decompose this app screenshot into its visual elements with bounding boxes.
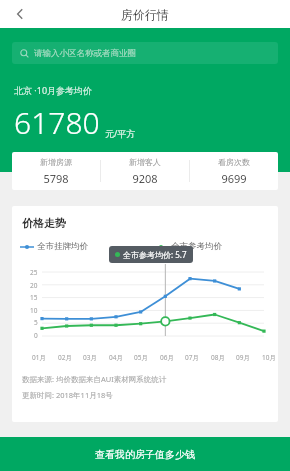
staticText: 全市挂牌均价 xyxy=(37,241,88,252)
staticText: 10 xyxy=(30,306,38,315)
staticText: 9699 xyxy=(221,171,247,186)
staticText: 05月 xyxy=(134,353,148,362)
staticText: 5 xyxy=(34,318,38,327)
staticText: 价格走势 xyxy=(22,216,66,230)
staticText: 房价行情 xyxy=(121,7,169,22)
staticText: 25 xyxy=(30,268,38,277)
staticText: 全市参考均价: 5.7 xyxy=(123,249,187,260)
staticText: 新增客人 xyxy=(129,157,161,167)
staticText: 06月 xyxy=(160,353,174,362)
staticText: 元/平方 xyxy=(105,127,136,139)
staticText: 04月 xyxy=(109,353,123,362)
staticText: 15 xyxy=(30,293,38,302)
staticText: 61780 xyxy=(14,102,100,143)
staticText: 01月 xyxy=(32,353,46,362)
staticText: 查看我的房子值多少钱 xyxy=(95,448,195,461)
staticText: 新增房源 xyxy=(40,157,72,167)
staticText: 0 xyxy=(34,331,38,340)
staticText: 数据来源: 均价数据来自AUI素材网系统统计 xyxy=(22,374,167,384)
staticText: 03月 xyxy=(83,353,97,362)
staticText: 08月 xyxy=(211,353,225,362)
staticText: 更新时间: 2018年11月18号 xyxy=(22,390,113,400)
staticText: 看房次数 xyxy=(218,157,250,167)
staticText: 5798 xyxy=(43,171,69,186)
staticText: 09月 xyxy=(236,353,250,362)
staticText: 07月 xyxy=(185,353,199,362)
button[interactable]: Back xyxy=(6,0,34,28)
button[interactable]: 查看我的房子值多少钱 xyxy=(0,437,290,471)
staticText: 北京 ·10月参考均价 xyxy=(14,84,93,96)
staticText: 10月 xyxy=(262,353,276,362)
staticText: 20 xyxy=(30,281,38,290)
staticText: 9208 xyxy=(132,171,158,186)
staticText: 02月 xyxy=(58,353,72,362)
button[interactable]: 请输入小区名称或者商业圈 xyxy=(12,42,278,64)
button[interactable]: 新增房源 xyxy=(12,152,278,190)
staticText: 请输入小区名称或者商业圈 xyxy=(34,48,136,59)
staticText: 全市参考均价 xyxy=(171,241,222,252)
